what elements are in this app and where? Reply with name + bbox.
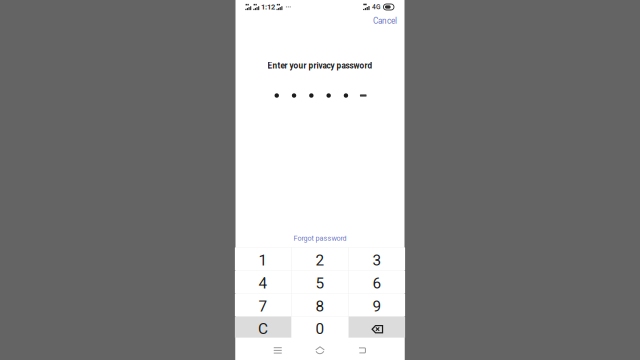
staticText: 7 — [259, 297, 268, 315]
staticText: 6 — [372, 274, 381, 292]
button[interactable]: 8 — [292, 294, 348, 316]
staticText: C — [258, 320, 268, 338]
staticText: 4 — [259, 274, 268, 292]
staticText: 1:12 — [261, 3, 275, 11]
staticText: 8 — [315, 297, 324, 315]
button[interactable]: 9 — [349, 294, 405, 316]
button[interactable]: 6 — [349, 271, 405, 293]
button[interactable]: 5 — [292, 271, 348, 293]
button[interactable]: 2 — [292, 248, 348, 270]
button[interactable]: Delete — [349, 317, 405, 338]
button[interactable]: Back — [341, 338, 383, 360]
staticText: 2 — [315, 251, 324, 269]
button[interactable]: 0 — [292, 317, 348, 338]
staticText: 0 — [315, 320, 324, 338]
button[interactable]: Recent apps — [257, 338, 299, 360]
staticText: 9 — [372, 297, 381, 315]
staticText: Forgot password — [293, 234, 346, 242]
button[interactable]: C — [235, 317, 291, 338]
button[interactable]: 7 — [235, 294, 291, 316]
staticText: 4G — [372, 3, 381, 11]
button[interactable]: 3 — [349, 248, 405, 270]
button[interactable]: 1 — [235, 248, 291, 270]
staticText: 3 — [372, 251, 381, 269]
button[interactable]: Home — [299, 338, 341, 360]
staticText: 1 — [259, 251, 268, 269]
staticText: Cancel — [373, 16, 397, 26]
button[interactable]: 4 — [235, 271, 291, 293]
button[interactable]: Cancel — [365, 14, 404, 28]
button[interactable]: Forgot password — [275, 229, 365, 242]
staticText: Enter your privacy password — [267, 61, 372, 70]
staticText: 5 — [315, 274, 324, 292]
